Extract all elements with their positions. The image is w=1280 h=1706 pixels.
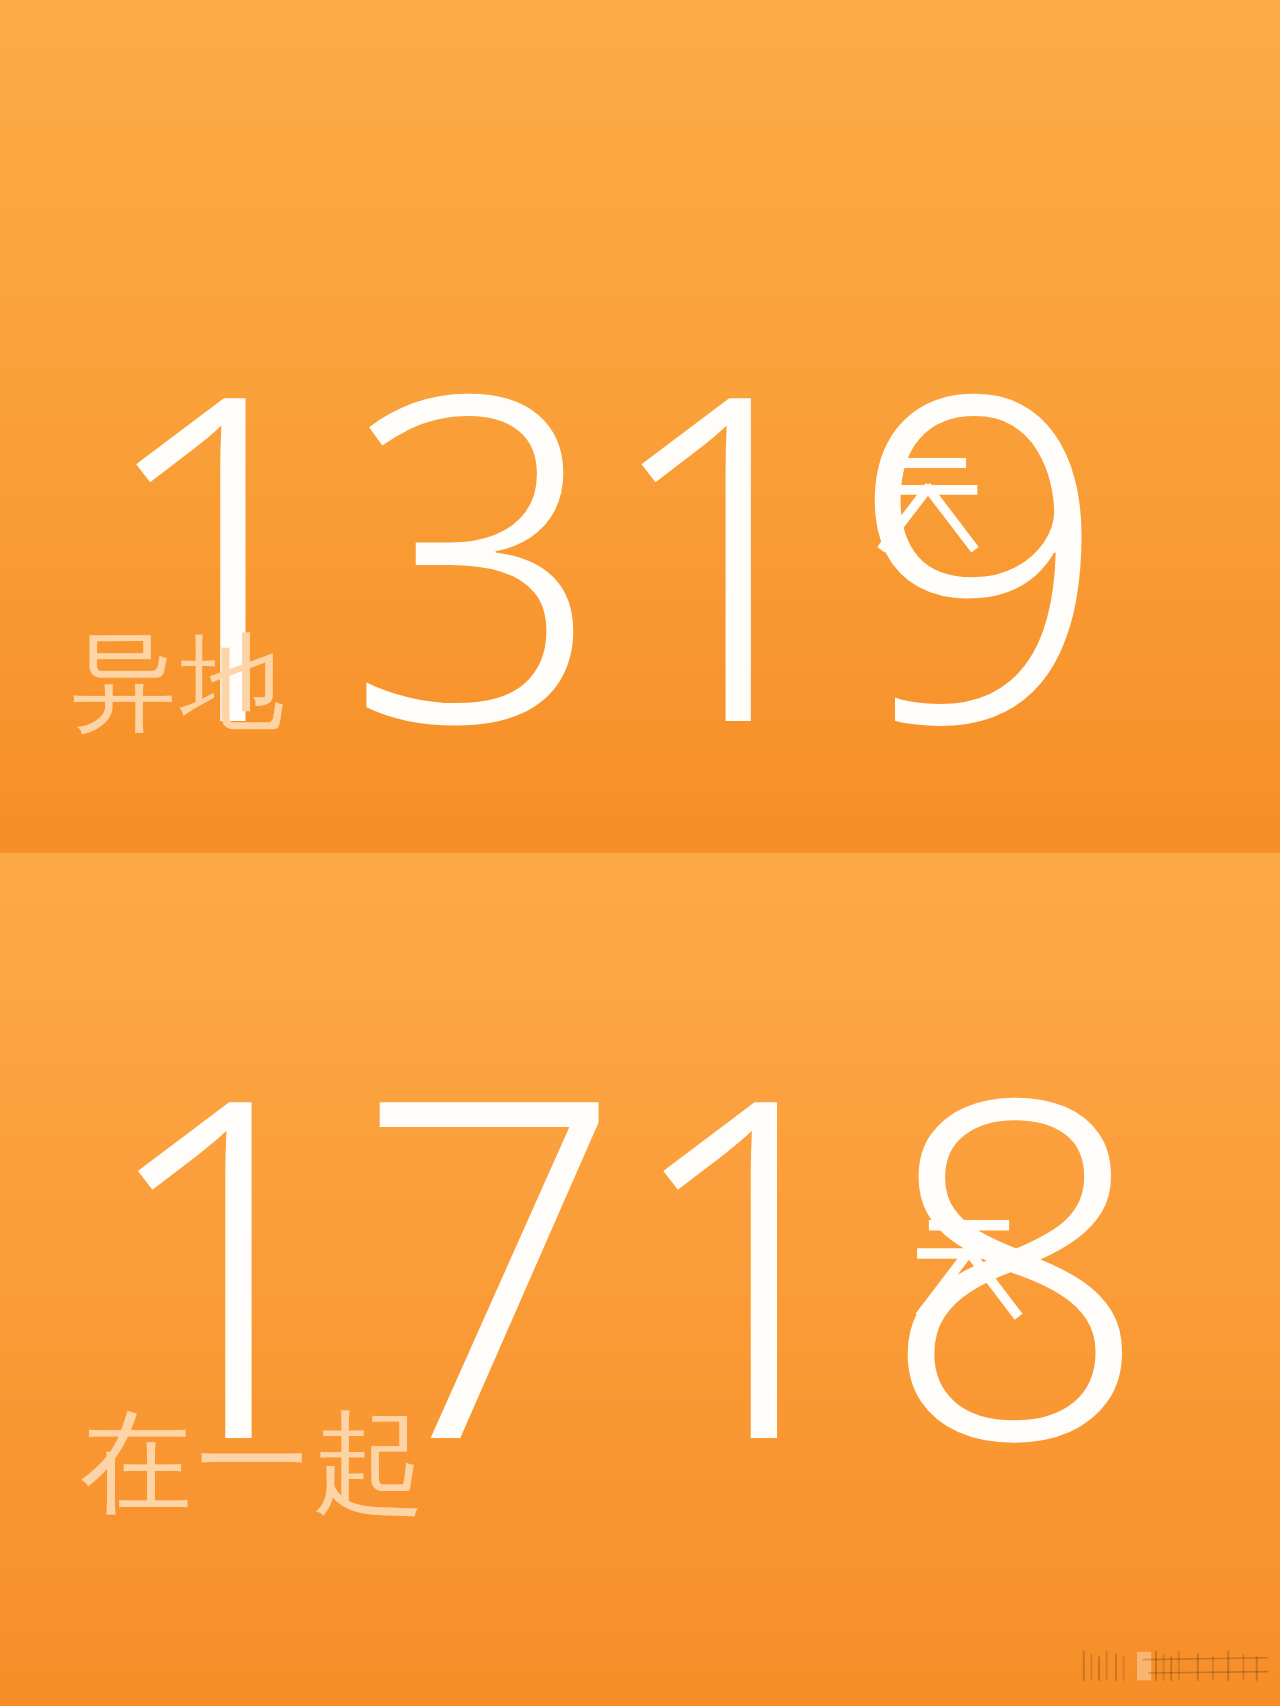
button[interactable]: 1319 天 异地: [0, 0, 1280, 853]
staticText: 1718: [93, 936, 1144, 1576]
staticText: 异地: [72, 618, 289, 749]
staticText: 1319: [93, 238, 1104, 854]
button[interactable]: 1718 天 在一起: [0, 853, 1280, 1706]
staticText: 在一起: [80, 1393, 430, 1534]
